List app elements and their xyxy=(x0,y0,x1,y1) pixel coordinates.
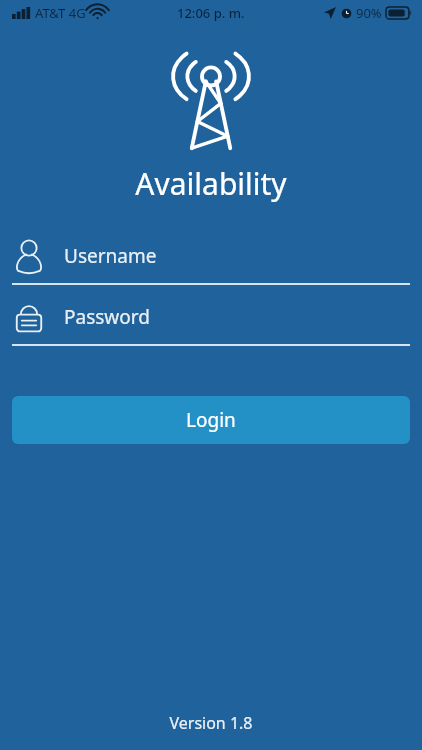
other: Availability logo xyxy=(156,44,266,152)
staticText: Password xyxy=(64,304,150,330)
staticText: Login xyxy=(186,407,236,433)
staticText: 12:06 p. m. xyxy=(177,4,245,22)
staticText: AT&T 4G xyxy=(35,4,86,22)
other: Password xyxy=(12,297,46,337)
staticText: Availability xyxy=(0,163,422,204)
button[interactable]: Username xyxy=(12,228,410,285)
button[interactable]: Login xyxy=(12,396,410,444)
staticText: 90% xyxy=(356,4,382,22)
staticText: Username xyxy=(64,243,157,269)
staticText: Version 1.8 xyxy=(0,712,422,734)
other: Username xyxy=(12,236,46,276)
button[interactable]: Password xyxy=(12,289,410,346)
